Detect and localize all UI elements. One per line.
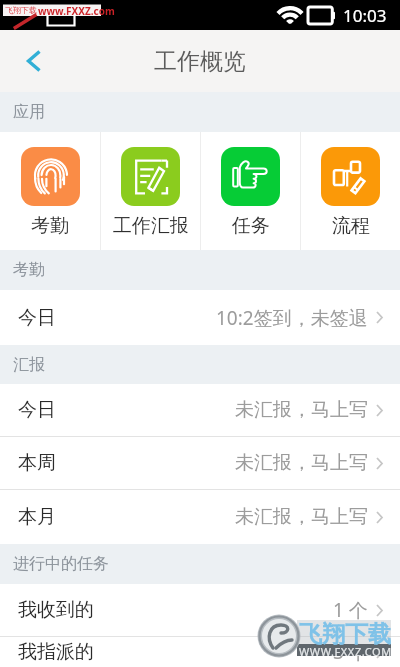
staticText: www.FXXZ.com xyxy=(38,4,115,18)
staticText: 飞翔下载 xyxy=(5,5,37,15)
staticText: 今日 xyxy=(18,306,56,330)
button[interactable]: 工作汇报 xyxy=(101,132,200,238)
button[interactable]: 本周 xyxy=(0,437,400,490)
staticText: 今日 xyxy=(18,398,56,422)
staticText: 3 个 xyxy=(333,639,368,665)
staticText: 我指派的 xyxy=(18,640,94,664)
staticText: 考勤 xyxy=(13,260,45,280)
staticText: 未汇报，马上写 xyxy=(235,505,368,529)
staticText: 1 个 xyxy=(333,597,368,623)
staticText: 汇报 xyxy=(13,355,45,375)
button[interactable]: 考勤 xyxy=(0,132,100,238)
staticText: 飞翔下载 xyxy=(299,620,391,649)
button[interactable]: 我收到的 xyxy=(0,584,400,637)
staticText: 流程 xyxy=(332,214,370,238)
button[interactable]: 今日 xyxy=(0,290,400,345)
staticText: 未汇报，马上写 xyxy=(235,451,368,475)
staticText: WWW.FXXZ.COM xyxy=(299,644,392,659)
button[interactable]: 今日 xyxy=(0,384,400,437)
staticText: 进行中的任务 xyxy=(13,554,109,574)
staticText: 工作汇报 xyxy=(113,214,189,238)
staticText: 应用 xyxy=(13,102,45,122)
staticText: 10:2签到，未签退 xyxy=(216,305,368,331)
staticText: 考勤 xyxy=(31,214,69,238)
button[interactable]: Back xyxy=(0,30,67,92)
staticText: 任务 xyxy=(232,214,270,238)
staticText: 本月 xyxy=(18,505,56,529)
button[interactable]: 流程 xyxy=(301,132,400,238)
button[interactable]: 本月 xyxy=(0,490,400,544)
staticText: 10:03 xyxy=(343,4,387,27)
button[interactable]: 任务 xyxy=(201,132,300,238)
button[interactable]: 我指派的 xyxy=(0,637,400,667)
staticText: 我收到的 xyxy=(18,598,94,622)
staticText: 未汇报，马上写 xyxy=(235,398,368,422)
staticText: 工作概览 xyxy=(154,47,246,76)
staticText: 本周 xyxy=(18,451,56,475)
